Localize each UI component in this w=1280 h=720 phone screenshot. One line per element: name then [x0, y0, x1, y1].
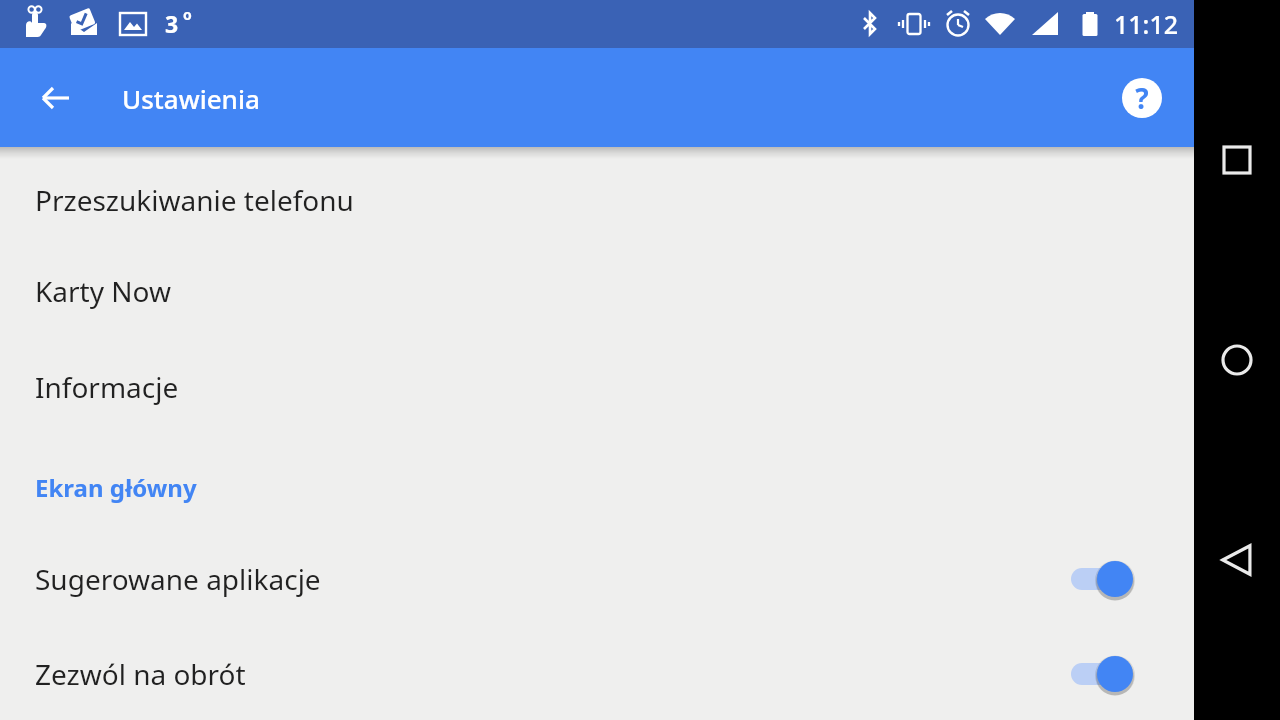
button[interactable]: Sugerowane aplikacje — [0, 531, 1194, 627]
staticText: Ekran główny — [35, 471, 197, 504]
button[interactable]: Back — [28, 70, 84, 126]
button[interactable]: Informacje — [0, 339, 1194, 435]
button[interactable]: Karty Now — [0, 243, 1194, 339]
button[interactable]: Back — [1205, 528, 1269, 592]
staticText: ? — [1135, 79, 1149, 117]
staticText: Karty Now — [35, 272, 171, 310]
staticText: Zezwól na obrót — [35, 655, 1071, 693]
staticText: Sugerowane aplikacje — [35, 560, 1071, 598]
button[interactable]: Przeszukiwanie telefonu — [0, 156, 1194, 243]
staticText: 11:12 — [1114, 7, 1179, 41]
button[interactable]: Recent apps — [1205, 128, 1269, 192]
staticText: Przeszukiwanie telefonu — [35, 181, 354, 219]
staticText: Informacje — [35, 368, 179, 406]
button[interactable]: Help — [1114, 70, 1170, 126]
staticText: o — [183, 5, 192, 24]
button[interactable]: Home — [1205, 328, 1269, 392]
staticText: 3 — [165, 8, 179, 39]
staticText: Ustawienia — [122, 81, 260, 116]
button[interactable]: Zezwól na obrót — [0, 627, 1194, 720]
